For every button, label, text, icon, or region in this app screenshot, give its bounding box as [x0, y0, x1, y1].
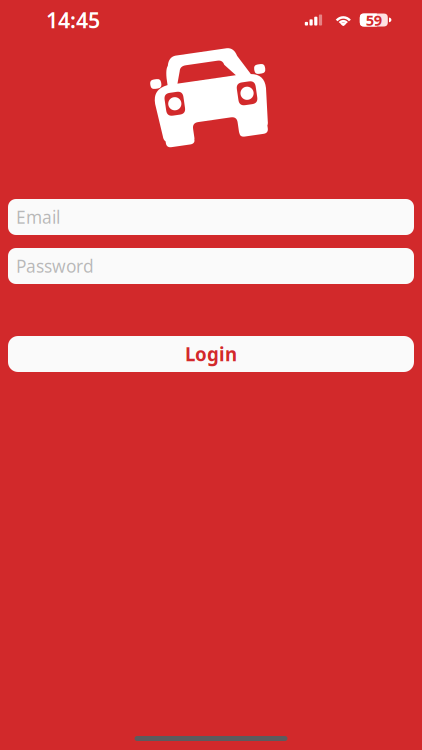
- button[interactable]: Login: [8, 336, 414, 372]
- staticText: Login: [185, 342, 237, 366]
- staticText: 14:45: [46, 6, 100, 34]
- staticText: Password: [16, 254, 94, 277]
- staticText: 59: [366, 10, 382, 30]
- button[interactable]: Password: [8, 248, 414, 284]
- staticText: Email: [16, 205, 60, 228]
- button[interactable]: Email: [8, 199, 414, 235]
